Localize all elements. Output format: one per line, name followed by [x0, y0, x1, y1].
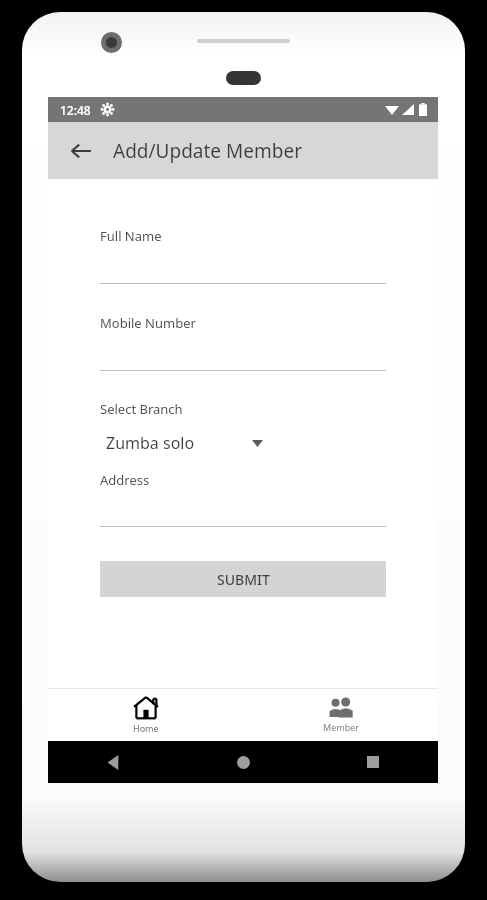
staticText: Address	[100, 471, 150, 489]
staticText: Mobile Number	[100, 314, 196, 332]
button[interactable]: Home	[178, 741, 308, 783]
staticText: Home	[133, 722, 159, 734]
staticText: SUBMIT	[217, 570, 270, 589]
staticText: Zumba solo	[106, 432, 195, 454]
button[interactable]: Member	[243, 688, 438, 741]
button[interactable]: Home	[48, 688, 243, 741]
staticText: 12:48	[60, 102, 91, 118]
staticText: Full Name	[100, 227, 162, 245]
button[interactable]: Back	[61, 131, 101, 171]
staticText: Member	[323, 721, 359, 733]
staticText: Add/Update Member	[113, 138, 302, 164]
button[interactable]: Zumba solo	[100, 430, 386, 456]
button[interactable]: Recent apps	[308, 741, 438, 783]
staticText: Select Branch	[100, 400, 183, 418]
button[interactable]: Back	[48, 741, 178, 783]
button[interactable]: SUBMIT	[100, 561, 386, 597]
